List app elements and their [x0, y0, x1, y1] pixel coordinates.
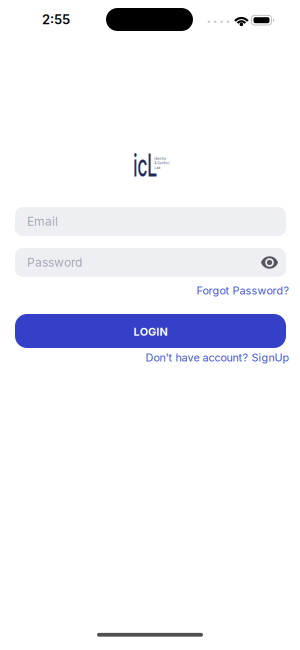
- staticText: Identity: [154, 157, 166, 160]
- staticText: & Conflict: [154, 161, 169, 165]
- staticText: Forgot Password?: [196, 284, 289, 297]
- staticText: icL: [125, 147, 166, 184]
- staticText: Password: [27, 255, 82, 270]
- staticText: Lab: [154, 166, 160, 170]
- staticText: Don't have account? SignUp: [145, 351, 289, 364]
- staticText: 2:55: [42, 12, 70, 27]
- staticText: Email: [27, 214, 58, 229]
- staticText: LOGIN: [133, 325, 167, 338]
